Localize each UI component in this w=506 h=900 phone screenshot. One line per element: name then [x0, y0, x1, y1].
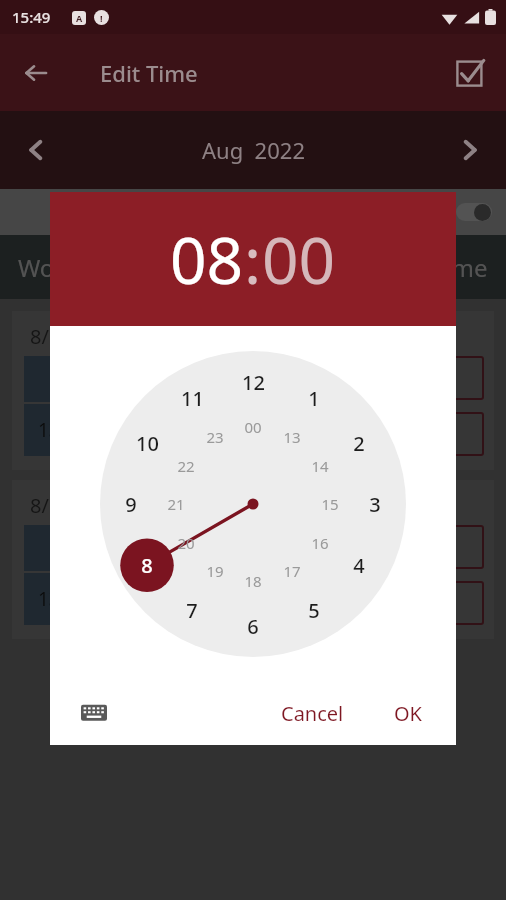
button[interactable]: 10: [127, 423, 167, 463]
staticText: 8/12: [30, 323, 72, 350]
button[interactable]: 11: [172, 378, 212, 418]
button[interactable]: 17: [276, 555, 308, 587]
staticText: 13:00: [283, 590, 335, 617]
button[interactable]: 14: [304, 450, 336, 482]
button[interactable]: Confirm: [446, 49, 494, 97]
staticText: 17:00: [180, 586, 229, 612]
staticText: 15:49: [12, 7, 51, 27]
staticText: 8: [141, 552, 153, 579]
staticText: Edit Time: [100, 58, 198, 88]
staticText: A: [76, 12, 83, 24]
staticText: Aug 2022: [202, 135, 305, 165]
staticText: !: [100, 12, 103, 24]
staticText: 19: [206, 561, 224, 581]
staticText: 18: [244, 571, 262, 591]
button[interactable]: 16:07: [372, 412, 484, 456]
staticText: 08:00: [283, 365, 335, 392]
button[interactable]: Switch to text input: [74, 693, 114, 733]
button[interactable]: 16: [304, 527, 336, 559]
button[interactable]: 1: [294, 378, 334, 418]
staticText: 13:00: [283, 421, 335, 448]
staticText: 14: [311, 456, 329, 476]
staticText: 23: [206, 427, 224, 447]
staticText: 00: [244, 417, 262, 437]
button[interactable]: 18: [237, 565, 269, 597]
staticText: 8/15: [30, 492, 72, 519]
staticText: OK: [394, 700, 422, 727]
button[interactable]: 13:00: [253, 581, 364, 625]
staticText: 12: [242, 369, 265, 396]
staticText: 5: [308, 597, 320, 624]
button[interactable]: 08:00: [253, 356, 364, 400]
button[interactable]: 8: [127, 545, 167, 585]
button[interactable]: 12:00: [372, 525, 484, 569]
staticText: 6: [247, 613, 259, 640]
button[interactable]: 23: [199, 421, 231, 453]
button[interactable]: 16:07: [372, 581, 484, 625]
staticText: 4: [353, 552, 365, 579]
staticText: 17:00: [180, 417, 229, 443]
button[interactable]: 21: [160, 488, 192, 520]
staticText: 17: [283, 561, 301, 581]
button[interactable]: Previous month: [14, 128, 58, 172]
button[interactable]: Back: [14, 51, 58, 95]
staticText: Time: [432, 251, 488, 284]
button[interactable]: Cancel: [267, 692, 358, 735]
button[interactable]: 4: [339, 545, 379, 585]
button[interactable]: 19: [199, 555, 231, 587]
staticText: 1: [308, 385, 320, 412]
staticText: 22: [177, 456, 195, 476]
staticText: 21: [167, 494, 185, 514]
button[interactable]: 00: [262, 216, 336, 303]
staticText: 2: [353, 430, 365, 457]
staticText: 13:00: [38, 586, 87, 612]
staticText: Work: [18, 251, 78, 284]
staticText: 13: [283, 427, 301, 447]
button[interactable]: 13:00: [253, 412, 364, 456]
staticText: Cancel: [281, 700, 344, 727]
staticText: 16: [311, 533, 329, 553]
button[interactable]: Next month: [448, 128, 492, 172]
button[interactable]: 20: [170, 527, 202, 559]
button[interactable]: 2: [339, 423, 379, 463]
button[interactable]: 7: [172, 590, 212, 630]
staticText: 08:00: [283, 534, 335, 561]
button[interactable]: 12: [233, 362, 273, 402]
button[interactable]: 13: [276, 421, 308, 453]
staticText: 10: [136, 430, 159, 457]
staticText: 13:00: [38, 417, 87, 443]
staticText: 15: [321, 494, 339, 514]
staticText: :: [244, 216, 262, 303]
button[interactable]: 08:00: [253, 525, 364, 569]
button[interactable]: 22: [170, 450, 202, 482]
button[interactable]: OK: [380, 692, 436, 735]
button[interactable]: 00: [237, 411, 269, 443]
button[interactable]: 6: [233, 606, 273, 646]
button[interactable]: 3: [355, 484, 395, 524]
staticText: 11: [181, 385, 204, 412]
button[interactable]: 5: [294, 590, 334, 630]
staticText: 9: [125, 491, 137, 518]
staticText: 20: [177, 533, 195, 553]
button[interactable]: 15: [314, 488, 346, 520]
button[interactable]: 08: [170, 216, 244, 303]
staticText: 7: [186, 597, 198, 624]
button[interactable]: 12:00: [372, 356, 484, 400]
staticText: 3: [369, 491, 381, 518]
button[interactable]: Toggle: [456, 203, 492, 221]
button[interactable]: 9: [111, 484, 151, 524]
